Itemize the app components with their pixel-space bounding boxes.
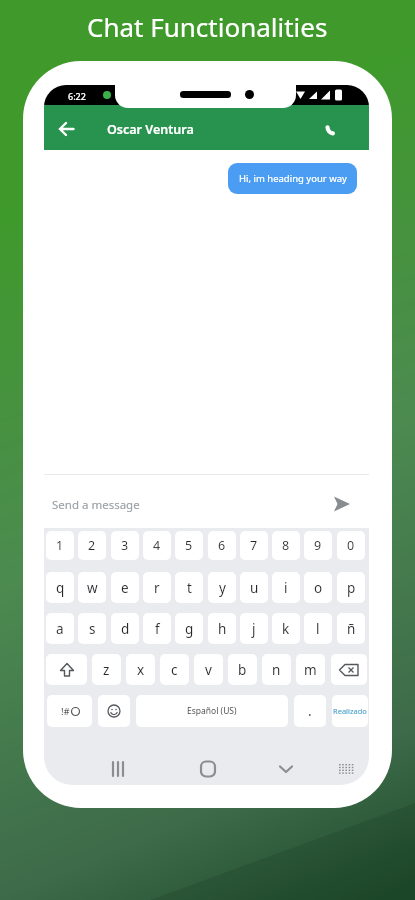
staticText: 0 [347,537,355,554]
button[interactable]: d [111,613,139,644]
button[interactable] [46,654,87,685]
button[interactable]: 7 [240,531,268,560]
button[interactable] [196,757,220,781]
staticText: a [56,620,64,638]
staticText: q [56,579,65,597]
button[interactable]: !# [47,695,92,727]
staticText: h [218,620,227,638]
button[interactable]: p [337,572,365,603]
button[interactable]: h [208,613,236,644]
button[interactable]: 5 [175,531,203,560]
staticText: r [154,579,160,597]
staticText: x [137,661,145,679]
staticText: s [89,620,96,638]
button[interactable]: 1 [46,531,74,560]
button[interactable]: Español (US) [136,695,288,727]
button[interactable]: w [78,572,106,603]
staticText: 5 [185,537,193,554]
staticText: . [308,702,312,720]
button[interactable]: m [296,654,325,685]
button[interactable]: . [294,695,326,727]
staticText: k [282,620,290,638]
button[interactable]: f [143,613,171,644]
staticText: i [284,579,288,597]
button[interactable]: k [272,613,300,644]
button[interactable]: a [46,613,74,644]
staticText: u [250,579,259,597]
button[interactable]: i [272,572,300,603]
staticText: 6:22 [68,90,86,102]
button[interactable]: b [228,654,257,685]
button[interactable]: 6 [208,531,236,560]
button[interactable] [334,757,358,781]
staticText: j [252,620,256,638]
staticText: d [121,620,130,638]
button[interactable]: ñ [337,613,365,644]
button[interactable]: y [208,572,236,603]
staticText: 3 [121,537,129,554]
button[interactable] [327,490,357,520]
button[interactable] [106,757,130,781]
staticText: v [205,661,212,679]
button[interactable] [98,695,130,727]
staticText: 8 [282,537,290,554]
button[interactable]: 3 [111,531,139,560]
button[interactable]: o [304,572,332,603]
button[interactable]: q [46,572,74,603]
staticText: n [272,661,281,679]
button[interactable]: Realizado [332,695,368,727]
staticText: Oscar Ventura [107,121,194,138]
staticText: g [185,620,194,638]
staticText: Español (US) [187,705,237,717]
staticText: 7 [250,537,258,554]
staticText: o [314,579,323,597]
button[interactable]: 0 [337,531,365,560]
staticText: 9 [314,537,322,554]
button[interactable]: 2 [78,531,106,560]
staticText: y [219,579,226,597]
staticText: t [187,579,192,597]
button[interactable]: l [304,613,332,644]
button[interactable]: e [111,572,139,603]
button[interactable] [54,116,80,142]
staticText: ñ [347,620,356,638]
staticText: e [121,579,129,597]
button[interactable]: 4 [143,531,171,560]
button[interactable]: g [175,613,203,644]
button[interactable]: 8 [272,531,300,560]
button[interactable]: n [262,654,291,685]
staticText: Realizado [333,706,367,716]
staticText: b [238,661,247,679]
button[interactable]: Hi, im heading your way [228,163,357,194]
staticText: 4 [153,537,161,554]
staticText: !# [61,705,70,718]
staticText: Chat Functionalities [87,9,328,44]
staticText: 6 [218,537,226,554]
button[interactable]: s [78,613,106,644]
button[interactable]: j [240,613,268,644]
button[interactable]: c [160,654,189,685]
button[interactable]: z [92,654,121,685]
staticText: w [87,579,98,597]
staticText: c [171,661,178,679]
button[interactable] [322,116,346,140]
staticText: m [304,661,317,679]
staticText: l [316,620,320,638]
staticText: 1 [56,537,64,554]
staticText: f [155,620,160,638]
staticText: Send a message [52,497,140,513]
button[interactable]: r [143,572,171,603]
staticText: p [347,579,356,597]
staticText: 2 [88,537,96,554]
staticText: Hi, im heading your way [239,172,347,185]
button[interactable] [331,654,367,685]
button[interactable]: v [194,654,223,685]
button[interactable] [274,757,298,781]
button[interactable]: t [175,572,203,603]
button[interactable]: u [240,572,268,603]
button[interactable]: 9 [304,531,332,560]
button[interactable]: x [126,654,155,685]
staticText: z [103,661,110,679]
